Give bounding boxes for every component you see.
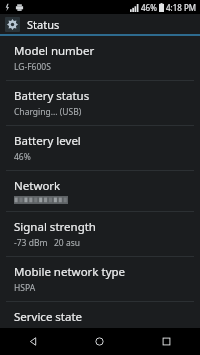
- staticText: Service state: [14, 309, 83, 325]
- staticText: Charging... (USB): [14, 106, 82, 118]
- button[interactable]: Home: [66, 328, 133, 355]
- button[interactable]: Recent apps: [133, 328, 200, 355]
- staticText: Network: [14, 178, 61, 194]
- staticText: LG-F600S: [14, 61, 51, 73]
- button[interactable]: Service state: [0, 302, 200, 328]
- staticText: Mobile network type: [14, 264, 126, 280]
- staticText: -73 dBm 20 asu: [14, 237, 81, 249]
- button[interactable]: Network: [0, 171, 200, 211]
- staticText: 4:18 PM: [166, 2, 197, 13]
- button[interactable]: Battery status: [0, 81, 200, 125]
- button[interactable]: Mobile network type: [0, 257, 200, 301]
- staticText: Status: [27, 17, 60, 32]
- button[interactable]: Signal strength: [0, 212, 200, 256]
- staticText: 46%: [14, 151, 31, 163]
- staticText: Model number: [14, 43, 95, 59]
- button[interactable]: Back: [0, 328, 66, 355]
- staticText: Battery status: [14, 88, 90, 104]
- staticText: Battery level: [14, 133, 81, 149]
- button[interactable]: Battery level: [0, 126, 200, 170]
- button[interactable]: Model number: [0, 36, 200, 80]
- staticText: Signal strength: [14, 219, 96, 235]
- button[interactable]: Status: [0, 14, 200, 34]
- staticText: HSPA: [14, 282, 36, 294]
- staticText: 46%: [141, 2, 157, 13]
